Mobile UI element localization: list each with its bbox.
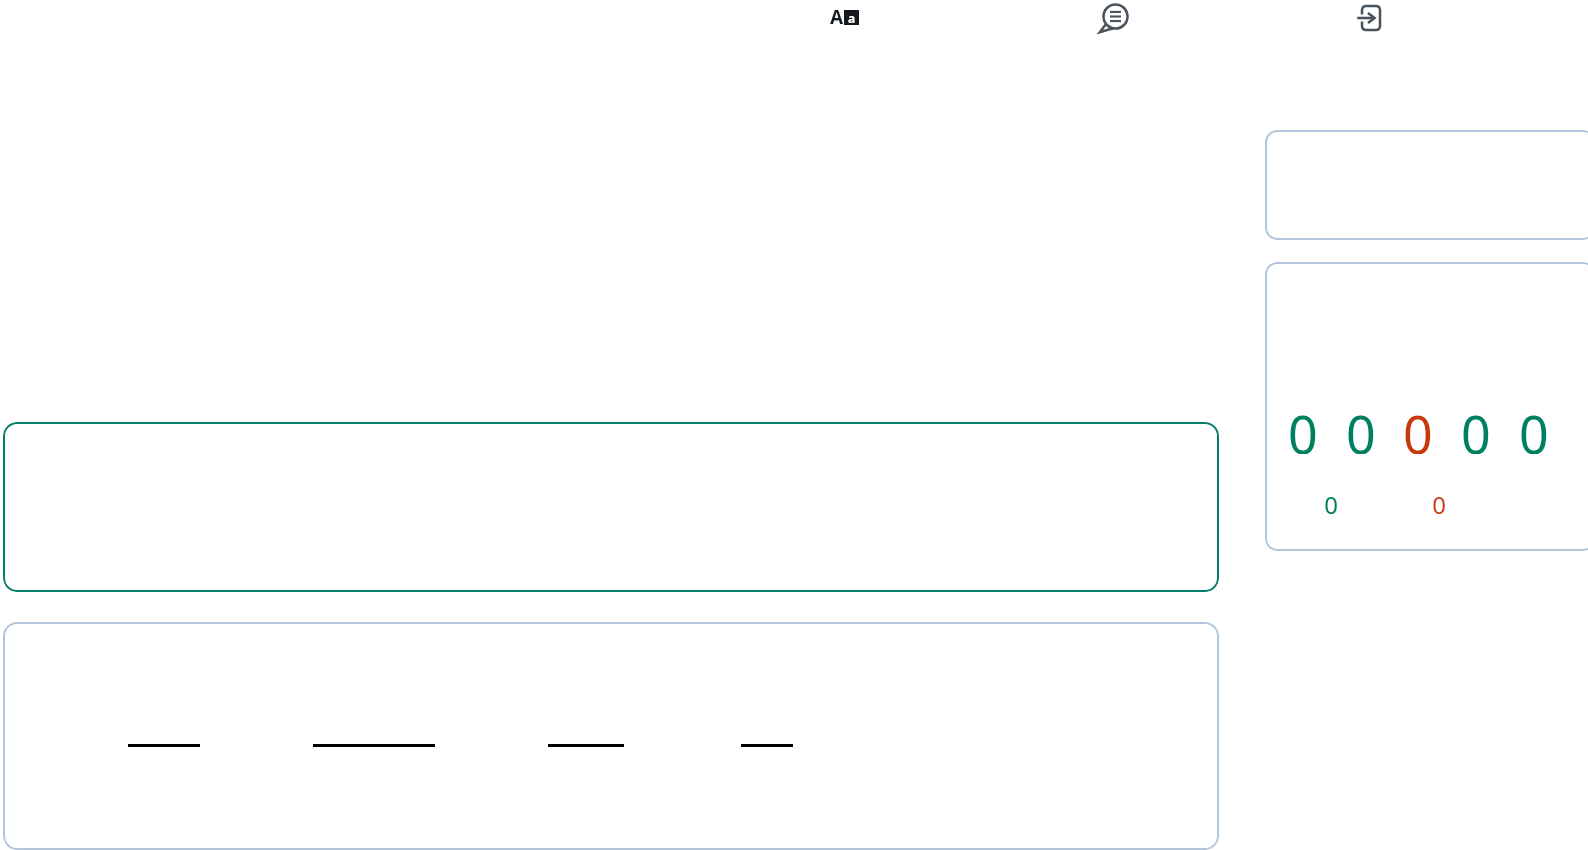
button[interactable]: 0 xyxy=(1430,488,1448,516)
button[interactable]: 0 xyxy=(1288,398,1316,454)
button[interactable]: Comments xyxy=(1086,0,1142,36)
button[interactable]: 0 xyxy=(1322,488,1340,516)
staticText: 0 xyxy=(1324,488,1338,516)
button[interactable] xyxy=(1265,130,1588,240)
staticText: A xyxy=(830,4,844,30)
staticText: 0 xyxy=(1519,398,1547,454)
button[interactable]: Exit xyxy=(1340,0,1396,36)
button[interactable]: 0 xyxy=(1403,398,1431,454)
button[interactable]: 0 xyxy=(1461,398,1489,454)
staticText: 0 xyxy=(1432,488,1446,516)
staticText: 0 xyxy=(1403,398,1431,454)
staticText: 0 xyxy=(1288,398,1316,454)
staticText: 0 xyxy=(1346,398,1374,454)
staticText: a xyxy=(848,10,856,25)
button[interactable] xyxy=(3,422,1219,592)
button[interactable]: 0 xyxy=(1346,398,1374,454)
staticText: 0 xyxy=(1461,398,1489,454)
button[interactable]: Text size xyxy=(814,0,874,34)
button[interactable]: 0 xyxy=(1519,398,1547,454)
